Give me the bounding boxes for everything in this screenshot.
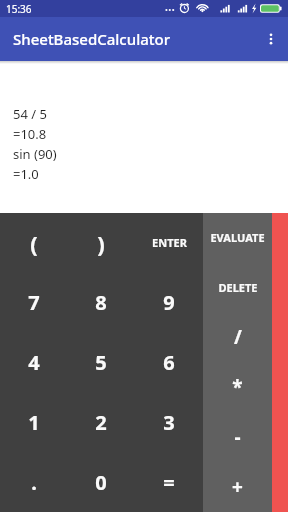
- staticText: =1.0: [13, 165, 39, 185]
- button[interactable]: 9: [135, 272, 203, 332]
- staticText: =10.8: [13, 125, 47, 145]
- button[interactable]: (: [0, 213, 67, 272]
- button[interactable]: 4: [0, 332, 67, 392]
- staticText: 7: [28, 289, 40, 316]
- staticText: ): [97, 228, 105, 258]
- button[interactable]: 8: [67, 272, 135, 332]
- staticText: 1: [28, 409, 40, 436]
- button[interactable]: 6: [135, 332, 203, 392]
- staticText: 2: [95, 409, 107, 436]
- staticText: +: [232, 474, 243, 500]
- button[interactable]: /: [203, 312, 272, 362]
- staticText: 15:36: [6, 2, 32, 16]
- button[interactable]: *: [203, 362, 272, 412]
- staticText: SheetBasedCalculator: [13, 29, 171, 49]
- staticText: DELETE: [218, 280, 258, 295]
- staticText: (: [30, 228, 38, 258]
- staticText: 6: [163, 349, 175, 376]
- staticText: 54 / 5: [13, 105, 47, 125]
- button[interactable]: 1: [0, 392, 67, 452]
- button[interactable]: 2: [67, 392, 135, 452]
- staticText: 0: [95, 469, 107, 496]
- button[interactable]: 0: [67, 452, 135, 512]
- button[interactable]: EVALUATE: [203, 213, 272, 262]
- button[interactable]: DELETE: [203, 262, 272, 312]
- staticText: ENTER: [152, 235, 187, 250]
- staticText: =: [163, 469, 175, 496]
- staticText: .: [31, 469, 37, 496]
- button[interactable]: .: [0, 452, 67, 512]
- staticText: 9: [163, 289, 175, 316]
- button[interactable]: ): [67, 213, 135, 272]
- staticText: 4: [28, 349, 40, 376]
- button[interactable]: =: [135, 452, 203, 512]
- staticText: EVALUATE: [210, 230, 265, 245]
- staticText: *: [232, 374, 243, 400]
- staticText: sin (90): [13, 145, 57, 165]
- staticText: /: [234, 324, 242, 350]
- button[interactable]: +: [203, 462, 272, 512]
- staticText: -: [234, 424, 241, 450]
- button[interactable]: 7: [0, 272, 67, 332]
- button[interactable]: More options: [254, 17, 288, 61]
- staticText: 8: [95, 289, 107, 316]
- button[interactable]: ENTER: [135, 213, 203, 272]
- button[interactable]: 3: [135, 392, 203, 452]
- staticText: 5: [95, 349, 107, 376]
- staticText: 3: [163, 409, 175, 436]
- button[interactable]: -: [203, 412, 272, 462]
- button[interactable]: 5: [67, 332, 135, 392]
